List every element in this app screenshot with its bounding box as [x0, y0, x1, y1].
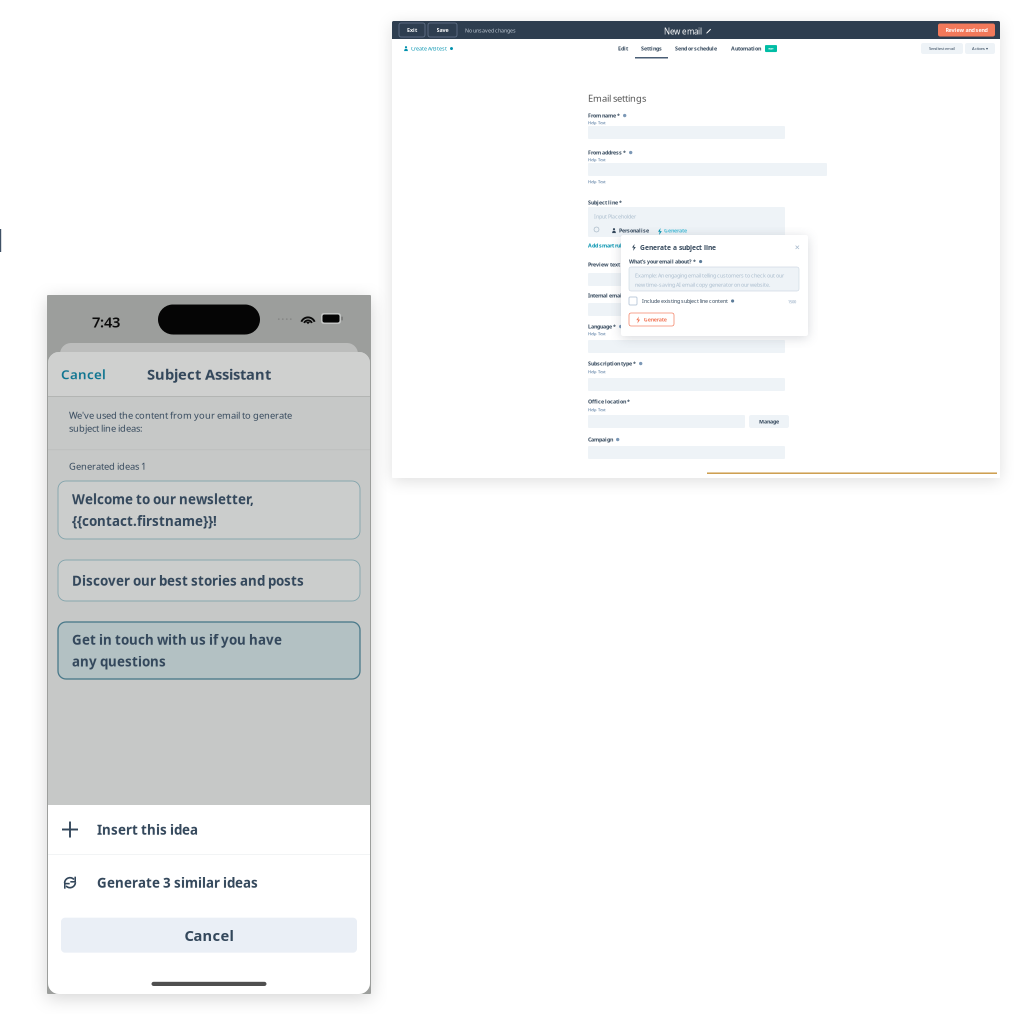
staticText: Exit	[407, 26, 417, 34]
staticText: We've used the content from your email t…	[69, 409, 292, 421]
button[interactable]: Automation	[731, 45, 777, 52]
button[interactable]: Actions ▾	[965, 43, 995, 54]
staticText: Help Text	[588, 157, 606, 162]
staticText: Edit	[618, 45, 628, 52]
staticText: Manage	[759, 418, 779, 425]
staticText: Campaign	[588, 436, 613, 443]
staticText: Help Text	[588, 120, 606, 125]
staticText: Subscription type *	[588, 360, 636, 367]
button[interactable]: Discover our best stories and posts	[58, 560, 360, 601]
button[interactable]: Manage	[749, 415, 789, 428]
staticText: Review and send	[945, 26, 987, 34]
button[interactable]: No unsaved changes	[465, 27, 516, 34]
staticText: Send test email	[929, 46, 955, 51]
staticText: Example: An engaging email telling custo…	[635, 272, 784, 279]
button[interactable]: Personalise	[612, 227, 649, 234]
button[interactable]: Cancel	[61, 361, 106, 387]
staticText: Save	[436, 26, 448, 34]
staticText: ✕	[794, 244, 800, 251]
button[interactable]: Cancel	[61, 918, 357, 953]
staticText: Generate	[664, 227, 687, 234]
staticText: Personalise	[619, 227, 649, 234]
button[interactable]: Get in touch with us if you have	[58, 622, 360, 679]
button[interactable]: Welcome to our newsletter,	[58, 481, 360, 539]
staticText: Help Text	[588, 407, 606, 412]
staticText: From name *	[588, 112, 620, 119]
staticText: Insert this idea	[97, 821, 198, 838]
staticText: Generate	[644, 316, 667, 323]
button[interactable]: Add smart rule	[588, 242, 625, 249]
staticText: Actions ▾	[972, 46, 988, 51]
staticText: Generate a subject line	[640, 243, 716, 252]
staticText: Internal email	[588, 292, 624, 299]
staticText: No unsaved changes	[465, 27, 516, 34]
button[interactable]: Generate	[629, 313, 674, 326]
staticText: Settings	[641, 45, 662, 52]
button[interactable]: Close	[793, 243, 802, 252]
button[interactable]: Insert this idea	[48, 805, 370, 854]
staticText: From address *	[588, 149, 626, 156]
staticText: 7:43	[92, 312, 120, 331]
staticText: Send or schedule	[675, 45, 717, 52]
button[interactable]: Generate	[658, 227, 687, 234]
staticText: Help Text	[588, 369, 606, 374]
staticText: Get in touch with us if you have	[72, 631, 282, 648]
staticText: Create A/B test	[411, 45, 447, 52]
staticText: What's your email about? *	[629, 258, 696, 265]
staticText: New email	[664, 26, 702, 37]
staticText: Add smart rule	[588, 242, 625, 249]
staticText: Welcome to our newsletter,	[72, 490, 254, 508]
staticText: Email settings	[588, 92, 646, 104]
button[interactable]: Send test email	[921, 43, 963, 54]
button[interactable]: Generate 3 similar ideas	[48, 855, 370, 911]
button[interactable]: Review and send	[938, 23, 995, 36]
staticText: Cancel	[61, 365, 106, 383]
staticText: NEW	[768, 47, 774, 50]
staticText: Include existing subject line content	[642, 297, 728, 305]
staticText: Input Placeholder	[594, 213, 636, 220]
button[interactable]: Save	[428, 23, 457, 37]
button[interactable]: Exit	[399, 23, 425, 37]
staticText: Automation	[731, 45, 761, 52]
staticText: Help Text	[588, 179, 606, 184]
staticText: Generated ideas 1	[69, 460, 146, 472]
button[interactable]: Send or schedule	[675, 45, 717, 52]
staticText: ····	[277, 310, 293, 328]
staticText: any questions	[72, 652, 166, 670]
staticText: Discover our best stories and posts	[72, 572, 304, 589]
staticText: Subject line *	[588, 199, 622, 206]
button[interactable]: Settings	[635, 45, 668, 58]
staticText: Subject Assistant	[147, 364, 271, 384]
staticText: subject line ideas:	[69, 422, 143, 434]
staticText: Generate 3 similar ideas	[97, 874, 258, 891]
staticText: {{contact.firstname}}!	[72, 512, 217, 530]
button[interactable]: Create A/B test	[404, 45, 453, 52]
staticText: 1500	[788, 299, 796, 304]
staticText: Cancel	[184, 925, 233, 945]
button[interactable]: Edit	[618, 45, 628, 52]
staticText: new time-saving AI email copy generator …	[635, 281, 770, 288]
staticText: Preview text	[588, 261, 620, 268]
staticText: Help Text	[588, 331, 606, 336]
staticText: Office location *	[588, 398, 630, 405]
staticText: Language *	[588, 323, 616, 330]
